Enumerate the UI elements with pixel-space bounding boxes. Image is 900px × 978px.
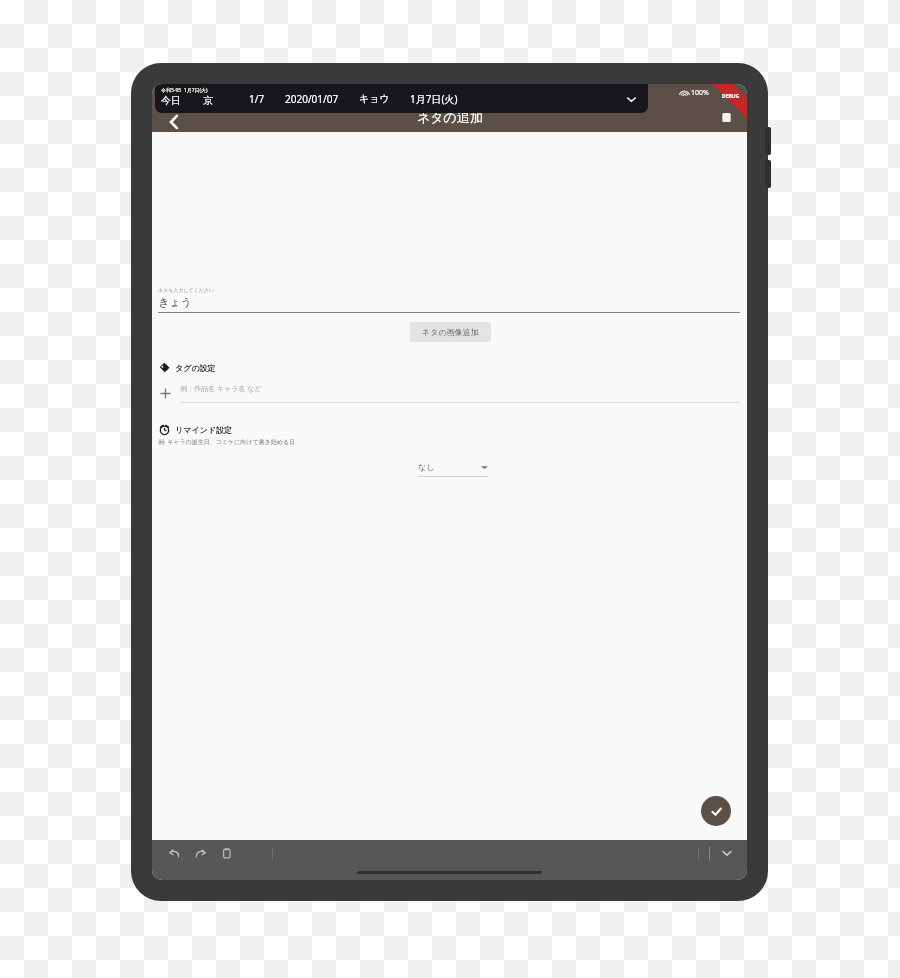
- button[interactable]: 1/7: [239, 88, 275, 110]
- staticText: 京: [203, 94, 213, 107]
- staticText: なし: [418, 462, 435, 472]
- button[interactable]: Save: [701, 796, 731, 826]
- button[interactable]: Delete: [711, 102, 741, 132]
- staticText: DEBUG: [722, 93, 740, 100]
- button[interactable]: 2020/01/07: [275, 88, 349, 110]
- button[interactable]: きょう: [158, 295, 740, 309]
- staticText: 1月7日(火): [410, 92, 458, 106]
- staticText: 今日: [161, 94, 181, 107]
- staticText: ネタの追加: [417, 109, 483, 125]
- button[interactable]: Clipboard: [216, 843, 236, 863]
- button[interactable]: なし: [418, 462, 488, 477]
- staticText: ネタを入力してください: [158, 287, 215, 293]
- staticText: 2020/01/07: [285, 92, 339, 106]
- staticText: タグの設定: [175, 363, 216, 373]
- staticText: 100%: [691, 88, 709, 98]
- button[interactable]: ネタの画像追加: [410, 322, 491, 342]
- button[interactable]: Hide keyboard: [717, 843, 737, 863]
- staticText: 1/7: [249, 92, 265, 106]
- staticText: ネタの画像追加: [422, 327, 479, 337]
- staticText: 例：作品名 キャラ名 など: [180, 384, 262, 394]
- button[interactable]: 例：作品名 キャラ名 など: [159, 384, 740, 403]
- staticText: キョウ: [359, 92, 390, 105]
- staticText: 令和5-95 1月7日(火): [161, 87, 208, 94]
- button[interactable]: Undo: [164, 843, 184, 863]
- button[interactable]: Back: [156, 104, 192, 140]
- staticText: リマインド設定: [175, 425, 232, 435]
- button[interactable]: Redo: [190, 843, 210, 863]
- staticText: 例: キャラの誕生日、コミケに向けて書き始める日: [158, 438, 295, 446]
- button[interactable]: Expand suggestions: [622, 90, 640, 108]
- button[interactable]: キョウ: [349, 88, 400, 109]
- button[interactable]: 1月7日(火): [400, 88, 468, 110]
- staticText: きょう: [158, 295, 192, 309]
